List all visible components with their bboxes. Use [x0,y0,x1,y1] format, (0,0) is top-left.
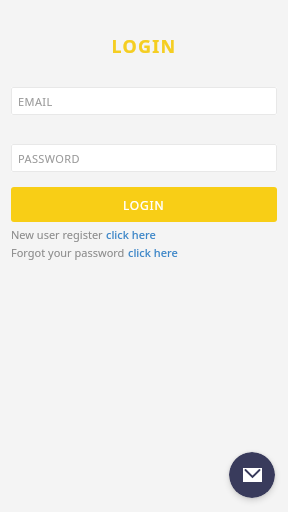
button[interactable]: Forgot your password [11,245,178,260]
button[interactable]: New user register [11,227,156,242]
staticText: New user register [11,227,103,242]
staticText: click here [128,245,178,260]
button[interactable]: LOGIN [11,187,277,222]
staticText: PASSWORD [18,151,80,166]
button[interactable]: PASSWORD [11,144,277,172]
button[interactable]: EMAIL [11,87,277,115]
staticText: LOGIN [111,34,177,59]
button[interactable]: Contact us by email [229,452,275,498]
staticText: LOGIN [123,197,165,213]
staticText: click here [106,227,156,242]
staticText: Forgot your password [11,245,125,260]
staticText: EMAIL [18,94,53,109]
